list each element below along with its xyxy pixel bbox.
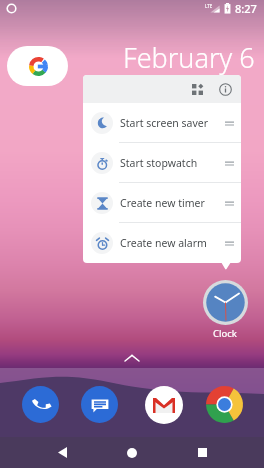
button[interactable]: Create new alarm xyxy=(83,223,241,263)
button[interactable]: Create new timer xyxy=(83,183,241,223)
button[interactable]: App info xyxy=(213,77,237,101)
button[interactable]: Widgets xyxy=(185,77,209,101)
button[interactable]: Messages xyxy=(81,386,118,423)
staticText: Start screen saver xyxy=(120,116,209,130)
staticText: Start stopwatch xyxy=(120,156,198,170)
staticText: Create new alarm xyxy=(120,236,207,250)
button[interactable]: Start stopwatch xyxy=(83,143,241,183)
button[interactable]: Google Search xyxy=(7,46,68,86)
staticText: Clock xyxy=(213,327,237,340)
button[interactable]: Gmail xyxy=(145,386,183,424)
button[interactable]: Back xyxy=(27,437,97,468)
button[interactable]: Home xyxy=(97,437,167,468)
staticText: Create new timer xyxy=(120,196,205,210)
staticText: February 6 xyxy=(123,39,255,76)
staticText: LTE xyxy=(205,3,213,9)
staticText: 8:27 xyxy=(235,1,257,16)
button[interactable]: Phone xyxy=(22,386,59,423)
button[interactable]: Start screen saver xyxy=(83,103,241,143)
button[interactable]: Clock xyxy=(203,280,248,325)
button[interactable]: All apps xyxy=(125,354,139,361)
button[interactable]: Recent apps xyxy=(167,437,237,468)
button[interactable]: Chrome xyxy=(206,386,243,423)
